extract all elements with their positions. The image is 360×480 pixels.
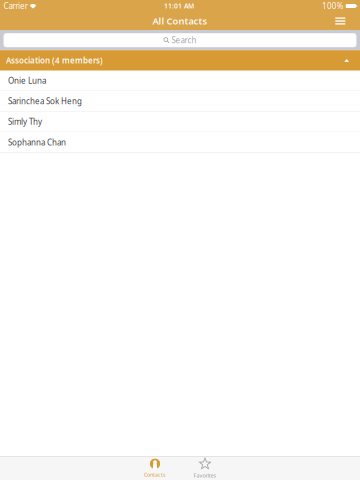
staticText: Sarinchea Sok Heng <box>8 96 82 106</box>
staticText: Carrier <box>3 1 28 11</box>
button[interactable]: Search <box>0 30 360 50</box>
staticText: Sophanna Chan <box>8 137 66 148</box>
button[interactable]: Favorites <box>180 457 230 479</box>
staticText: Favorites <box>193 472 216 479</box>
button[interactable]: Association (4 members) <box>0 50 360 71</box>
button[interactable]: Onie Luna <box>0 71 360 91</box>
button[interactable]: Sophanna Chan <box>0 132 360 153</box>
staticText: All Contacts <box>152 15 207 27</box>
staticText: Association (4 members) <box>6 55 103 66</box>
staticText: Contacts <box>144 471 166 478</box>
button[interactable]: Sarinchea Sok Heng <box>0 91 360 112</box>
staticText: 11:01 AM <box>164 2 194 10</box>
staticText: 100% <box>322 1 344 11</box>
button[interactable]: Simly Thy <box>0 112 360 132</box>
staticText: Onie Luna <box>8 75 46 86</box>
button[interactable]: Contacts <box>130 457 180 479</box>
staticText: Simly Thy <box>8 116 42 127</box>
staticText: Search <box>171 35 196 45</box>
button[interactable]: Menu <box>328 12 353 30</box>
